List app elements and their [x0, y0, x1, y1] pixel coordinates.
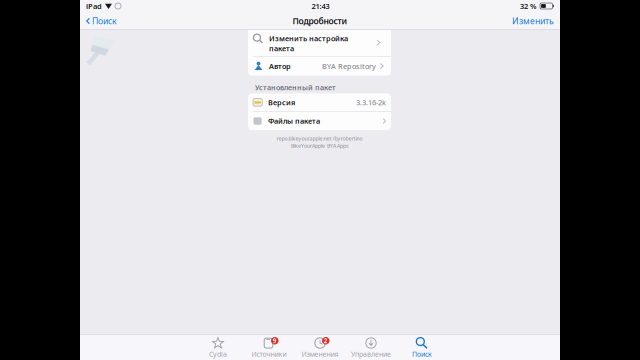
staticText: Подробности — [292, 15, 347, 27]
button[interactable]: 2 — [294, 334, 345, 360]
staticText: Файлы пакета — [268, 116, 320, 126]
staticText: BikeYourApple BYA Apps — [291, 142, 348, 149]
staticText: Управление — [351, 349, 391, 359]
staticText: Версия — [268, 97, 295, 107]
staticText: Изменить — [512, 15, 554, 27]
button[interactable]: Изменить настройка пакета — [248, 30, 391, 56]
staticText: 9 — [273, 337, 277, 345]
staticText: 2 — [324, 337, 328, 345]
button[interactable]: Версия — [248, 93, 391, 111]
staticText: Изменить настройка пакета — [269, 33, 348, 53]
button[interactable]: Поиск — [80, 12, 123, 30]
staticText: Поиск — [412, 349, 432, 359]
button[interactable]: 9 — [243, 334, 294, 360]
staticText: BYA Repository — [322, 61, 376, 71]
button[interactable]: Поиск — [396, 334, 447, 360]
button[interactable]: Автор — [248, 57, 391, 76]
staticText: 3.3.16-2k — [356, 97, 386, 107]
staticText: Cydia — [209, 349, 227, 359]
button[interactable]: Изменить — [506, 12, 560, 30]
staticText: iPad — [86, 1, 102, 11]
staticText: Установленный пакет — [255, 83, 336, 92]
staticText: repo.bikeyourapple.net /byrobertino — [276, 135, 362, 142]
button[interactable]: Управление — [345, 334, 396, 360]
button[interactable]: Cydia — [192, 334, 243, 360]
staticText: 21:43 — [311, 1, 329, 11]
staticText: Поиск — [92, 15, 117, 27]
button[interactable]: Файлы пакета — [248, 112, 391, 130]
staticText: Изменения — [301, 349, 338, 359]
staticText: Автор — [269, 61, 291, 71]
staticText: Источники — [251, 349, 286, 359]
staticText: 32 % — [520, 1, 537, 11]
